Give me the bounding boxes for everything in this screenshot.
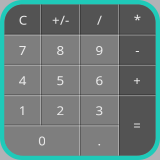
staticText: +/- <box>52 11 69 28</box>
button[interactable]: +/- <box>41 4 80 35</box>
button[interactable]: 9 <box>80 35 119 65</box>
button[interactable]: 4 <box>4 65 41 95</box>
button[interactable]: 2 <box>41 95 80 125</box>
button[interactable]: 1 <box>4 95 41 125</box>
button[interactable]: 6 <box>80 65 119 95</box>
staticText: C <box>19 11 27 28</box>
staticText: 3 <box>95 101 103 119</box>
staticText: 7 <box>19 41 27 59</box>
button[interactable]: 5 <box>41 65 80 95</box>
button[interactable]: 8 <box>41 35 80 65</box>
button[interactable]: . <box>80 125 119 155</box>
staticText: . <box>97 131 101 149</box>
staticText: 8 <box>56 41 64 59</box>
button[interactable]: - <box>119 35 155 65</box>
staticText: 1 <box>19 101 27 119</box>
button[interactable]: 0 <box>4 125 80 155</box>
button[interactable]: = <box>119 95 155 155</box>
button[interactable]: C <box>4 4 41 35</box>
staticText: 2 <box>56 101 64 119</box>
staticText: 9 <box>95 41 103 59</box>
button[interactable]: * <box>119 4 155 35</box>
staticText: 4 <box>19 71 27 89</box>
staticText: / <box>97 11 102 28</box>
staticText: * <box>134 11 141 28</box>
button[interactable]: 3 <box>80 95 119 125</box>
staticText: + <box>133 71 141 89</box>
button[interactable]: + <box>119 65 155 95</box>
staticText: 5 <box>56 71 64 89</box>
staticText: = <box>133 116 141 134</box>
staticText: 0 <box>38 131 46 149</box>
button[interactable]: 7 <box>4 35 41 65</box>
staticText: - <box>135 41 139 59</box>
staticText: 6 <box>95 71 103 89</box>
button[interactable]: / <box>80 4 119 35</box>
